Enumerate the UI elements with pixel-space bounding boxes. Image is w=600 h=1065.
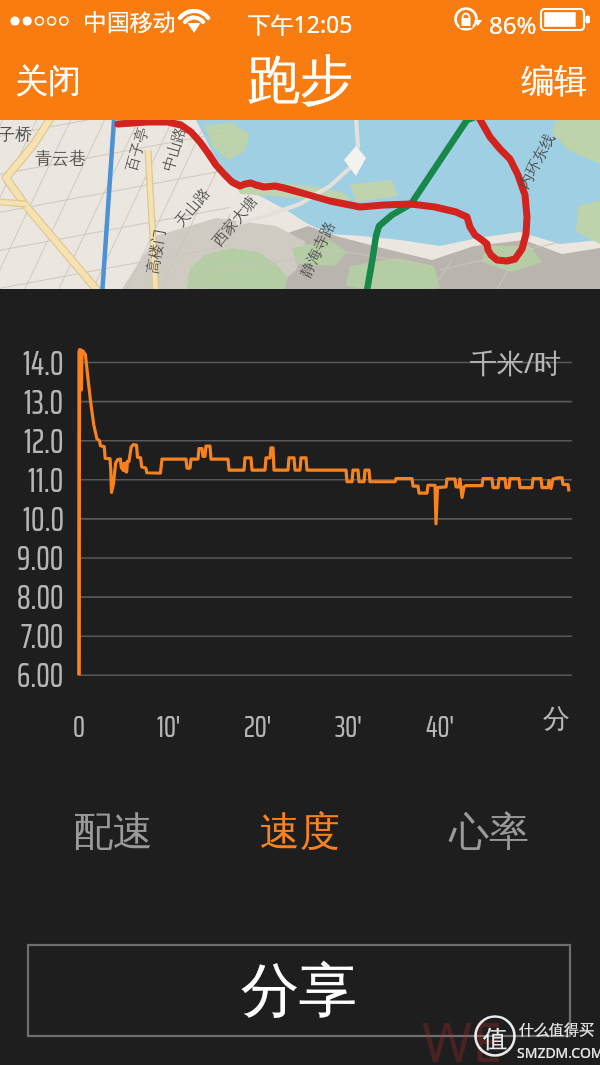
- staticText: 千米/时: [470, 344, 562, 381]
- staticText: 下午12:05: [0, 8, 600, 39]
- staticText: 分: [543, 702, 570, 736]
- staticText: 9.00: [17, 531, 64, 581]
- staticText: 8.00: [17, 570, 64, 620]
- button[interactable]: 关闭: [15, 60, 81, 102]
- staticText: WE: [422, 1004, 503, 1065]
- staticText: 心率: [449, 806, 529, 856]
- staticText: 10': [157, 703, 181, 750]
- staticText: 子桥: [0, 124, 32, 145]
- staticText: 12.0: [24, 414, 64, 464]
- staticText: 百子亭: [122, 125, 153, 174]
- button[interactable]: 编辑: [521, 60, 587, 102]
- staticText: 高楼门: [143, 228, 170, 275]
- staticText: 跑步: [0, 47, 600, 114]
- staticText: 0: [73, 703, 85, 750]
- button[interactable]: 心率: [399, 776, 579, 886]
- staticText: 7.00: [21, 609, 64, 659]
- button[interactable]: 配速: [23, 776, 203, 886]
- button[interactable]: 速度: [210, 776, 390, 886]
- staticText: 西家大塘: [208, 192, 261, 251]
- staticText: 分享: [241, 954, 357, 1027]
- staticText: 速度: [260, 806, 340, 856]
- staticText: 内环东线: [514, 131, 559, 192]
- staticText: 编辑: [521, 60, 587, 102]
- staticText: 10.0: [23, 492, 64, 542]
- staticText: 什么值得买: [519, 1021, 600, 1040]
- staticText: 20': [244, 703, 272, 750]
- button[interactable]: 分享: [28, 945, 570, 1036]
- staticText: 13.0: [24, 375, 64, 425]
- staticText: 中山路: [159, 125, 190, 174]
- staticText: 中国移动: [84, 8, 176, 37]
- staticText: 值: [483, 1024, 507, 1054]
- staticText: 配速: [73, 806, 153, 856]
- staticText: 14.0: [23, 336, 64, 386]
- staticText: 30': [335, 703, 362, 750]
- staticText: 6.00: [17, 648, 64, 698]
- staticText: 静海寺路: [296, 218, 340, 281]
- staticText: 天山路: [171, 184, 214, 231]
- staticText: 11.0: [28, 453, 64, 503]
- staticText: SMZDM.COM: [517, 1043, 600, 1062]
- staticText: 40': [426, 703, 454, 750]
- staticText: 关闭: [15, 60, 81, 102]
- staticText: 青云巷: [35, 148, 86, 169]
- staticText: 86%: [489, 8, 537, 41]
